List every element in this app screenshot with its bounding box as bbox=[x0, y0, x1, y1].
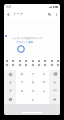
button[interactable]: Candidate bbox=[31, 59, 34, 62]
button[interactable]: Tool bbox=[5, 63, 8, 66]
button[interactable]: か bbox=[27, 70, 38, 78]
button[interactable]: 小 bbox=[4, 86, 16, 95]
button[interactable]: More options bbox=[53, 11, 60, 18]
staticText: や bbox=[31, 89, 35, 93]
staticText: は bbox=[42, 80, 46, 84]
button[interactable]: Tool bbox=[31, 63, 34, 66]
button[interactable]: は bbox=[38, 78, 49, 86]
button[interactable]: Tool bbox=[18, 63, 21, 66]
button[interactable]: わ bbox=[27, 95, 38, 104]
button[interactable]: な bbox=[27, 78, 38, 86]
button[interactable] bbox=[4, 95, 16, 104]
staticText: さ bbox=[42, 72, 46, 76]
staticText: た bbox=[20, 80, 24, 84]
staticText: アカウント連携 bbox=[16, 41, 34, 44]
button[interactable]: Tool bbox=[43, 63, 46, 66]
button[interactable]: Tool bbox=[37, 63, 40, 66]
staticText: トーク bbox=[13, 12, 24, 16]
button[interactable]: Back bbox=[4, 10, 13, 19]
button[interactable]: Candidate bbox=[5, 59, 8, 62]
button[interactable]: Candidate bbox=[24, 59, 27, 62]
staticText: ま bbox=[20, 89, 24, 93]
staticText: 小 bbox=[9, 89, 12, 93]
button[interactable] bbox=[4, 78, 16, 86]
button[interactable]: Tool bbox=[24, 63, 27, 66]
button[interactable]: た bbox=[16, 78, 27, 86]
button[interactable]: Tool bbox=[50, 63, 53, 66]
button[interactable]: Candidate bbox=[11, 59, 14, 62]
button[interactable]: Candidate bbox=[37, 59, 40, 62]
button[interactable]: ま bbox=[16, 86, 27, 95]
button[interactable]: さ bbox=[38, 70, 49, 78]
staticText: 、 bbox=[42, 98, 45, 102]
staticText: ら bbox=[42, 89, 46, 93]
button[interactable]: Candidate bbox=[56, 59, 59, 62]
button[interactable]: 空白 bbox=[49, 86, 60, 95]
staticText: 空白 bbox=[53, 89, 57, 92]
button[interactable]: あ bbox=[16, 70, 27, 78]
staticText: な bbox=[31, 80, 35, 84]
staticText: あ bbox=[20, 72, 24, 76]
button[interactable]: Tool bbox=[56, 63, 59, 66]
button[interactable]: Candidate bbox=[50, 59, 53, 62]
button[interactable]: や bbox=[27, 86, 38, 95]
button[interactable] bbox=[4, 70, 16, 78]
staticText: メッセージが送信されました bbox=[12, 37, 43, 40]
button[interactable]: ら bbox=[38, 86, 49, 95]
staticText: か bbox=[31, 72, 35, 76]
staticText: わ bbox=[31, 98, 35, 102]
button[interactable] bbox=[49, 70, 60, 78]
staticText: 9:41 bbox=[6, 5, 12, 9]
button[interactable]: Candidate bbox=[18, 59, 21, 62]
button[interactable] bbox=[49, 78, 60, 86]
button[interactable]: Search bbox=[45, 10, 53, 18]
button[interactable] bbox=[49, 95, 60, 104]
button[interactable]: Tool bbox=[11, 63, 14, 66]
button[interactable]: Candidate bbox=[43, 59, 46, 62]
